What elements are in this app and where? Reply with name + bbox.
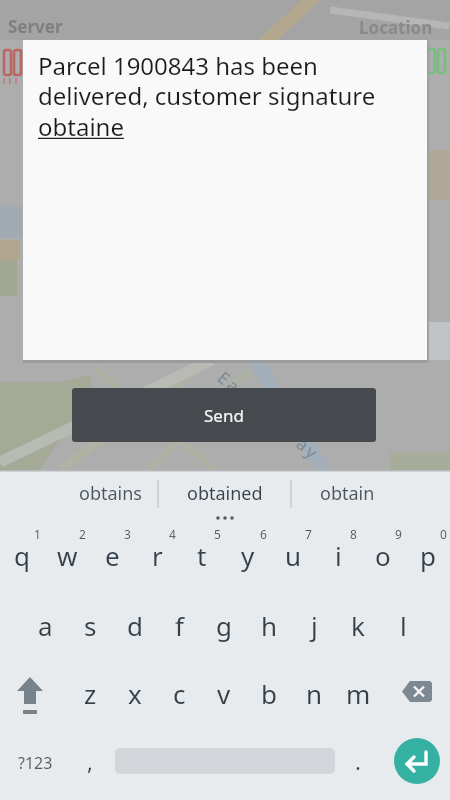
button[interactable]: i — [316, 522, 360, 588]
staticText: Parcel 1900843 has been delivered, custo… — [38, 49, 376, 143]
staticText: l — [400, 608, 407, 643]
button[interactable]: j — [292, 592, 336, 658]
staticText: obtain — [320, 481, 375, 506]
button[interactable] — [394, 664, 442, 720]
staticText: h — [261, 608, 278, 643]
staticText: b — [261, 676, 277, 711]
button[interactable]: obtain — [295, 477, 399, 509]
button[interactable]: e — [90, 522, 134, 588]
staticText: u — [285, 538, 302, 573]
staticText: y — [241, 538, 255, 573]
staticText: , — [87, 746, 93, 776]
staticText: 4 — [169, 526, 176, 542]
staticText: Location — [359, 16, 433, 39]
staticText: f — [175, 608, 184, 643]
staticText: 9 — [395, 526, 402, 542]
button[interactable]: v — [202, 660, 246, 726]
button[interactable]: m — [336, 660, 380, 726]
button[interactable]: obtains — [62, 477, 158, 509]
button[interactable]: u — [271, 522, 315, 588]
staticText: q — [14, 538, 30, 573]
button[interactable]: r — [135, 522, 179, 588]
staticText: 8 — [350, 526, 357, 542]
button[interactable]: k — [336, 592, 380, 658]
staticText: o — [375, 538, 391, 573]
staticText: x — [128, 676, 142, 711]
button[interactable]: Send — [72, 388, 376, 442]
button[interactable]: o — [361, 522, 405, 588]
button[interactable]: d — [113, 592, 157, 658]
button[interactable]: b — [247, 660, 291, 726]
staticText: 0 — [440, 526, 447, 542]
button[interactable]: g — [202, 592, 246, 658]
staticText: r — [152, 538, 163, 573]
staticText: Eastern Way — [213, 366, 324, 465]
button[interactable]: obtained — [168, 477, 282, 509]
staticText: k — [351, 608, 365, 643]
staticText: ?123 — [18, 752, 53, 774]
button[interactable]: q — [0, 522, 44, 588]
button[interactable]: t — [180, 522, 224, 588]
button[interactable]: p — [406, 522, 450, 588]
staticText: Server — [8, 15, 63, 38]
button[interactable]: x — [113, 660, 157, 726]
button[interactable]: l — [381, 592, 425, 658]
staticText: g — [216, 608, 232, 643]
button[interactable] — [68, 734, 112, 790]
staticText: s — [84, 608, 97, 643]
staticText: 1 — [34, 526, 41, 542]
staticText: obtained — [187, 481, 263, 506]
button[interactable] — [8, 664, 54, 720]
button[interactable]: y — [226, 522, 270, 588]
button[interactable]: z — [68, 660, 112, 726]
button[interactable] — [115, 746, 335, 776]
button[interactable] — [394, 738, 440, 784]
staticText: n — [306, 676, 323, 711]
button[interactable]: a — [23, 592, 67, 658]
staticText: p — [420, 538, 436, 573]
button[interactable]: f — [157, 592, 201, 658]
staticText: z — [84, 676, 97, 711]
button[interactable]: s — [68, 592, 112, 658]
staticText: 6 — [260, 526, 267, 542]
staticText: 2 — [79, 526, 86, 542]
staticText: 5 — [214, 526, 221, 542]
staticText: d — [127, 608, 143, 643]
staticText: v — [217, 676, 231, 711]
staticText: a — [38, 608, 53, 643]
staticText: c — [173, 676, 186, 711]
staticText: 7 — [305, 526, 312, 542]
staticText: t — [197, 538, 207, 573]
staticText: obtains — [79, 481, 142, 506]
button[interactable]: c — [157, 660, 201, 726]
staticText: j — [311, 608, 318, 643]
button[interactable] — [8, 734, 62, 790]
button[interactable]: w — [45, 522, 89, 588]
button[interactable]: h — [247, 592, 291, 658]
staticText: i — [335, 538, 342, 573]
staticText: w — [57, 538, 78, 573]
staticText: 3 — [124, 526, 131, 542]
staticText: e — [105, 538, 120, 573]
button[interactable] — [336, 734, 380, 790]
staticText: Send — [204, 404, 244, 427]
button[interactable]: n — [292, 660, 336, 726]
staticText: m — [346, 676, 371, 711]
staticText: . — [355, 746, 361, 776]
